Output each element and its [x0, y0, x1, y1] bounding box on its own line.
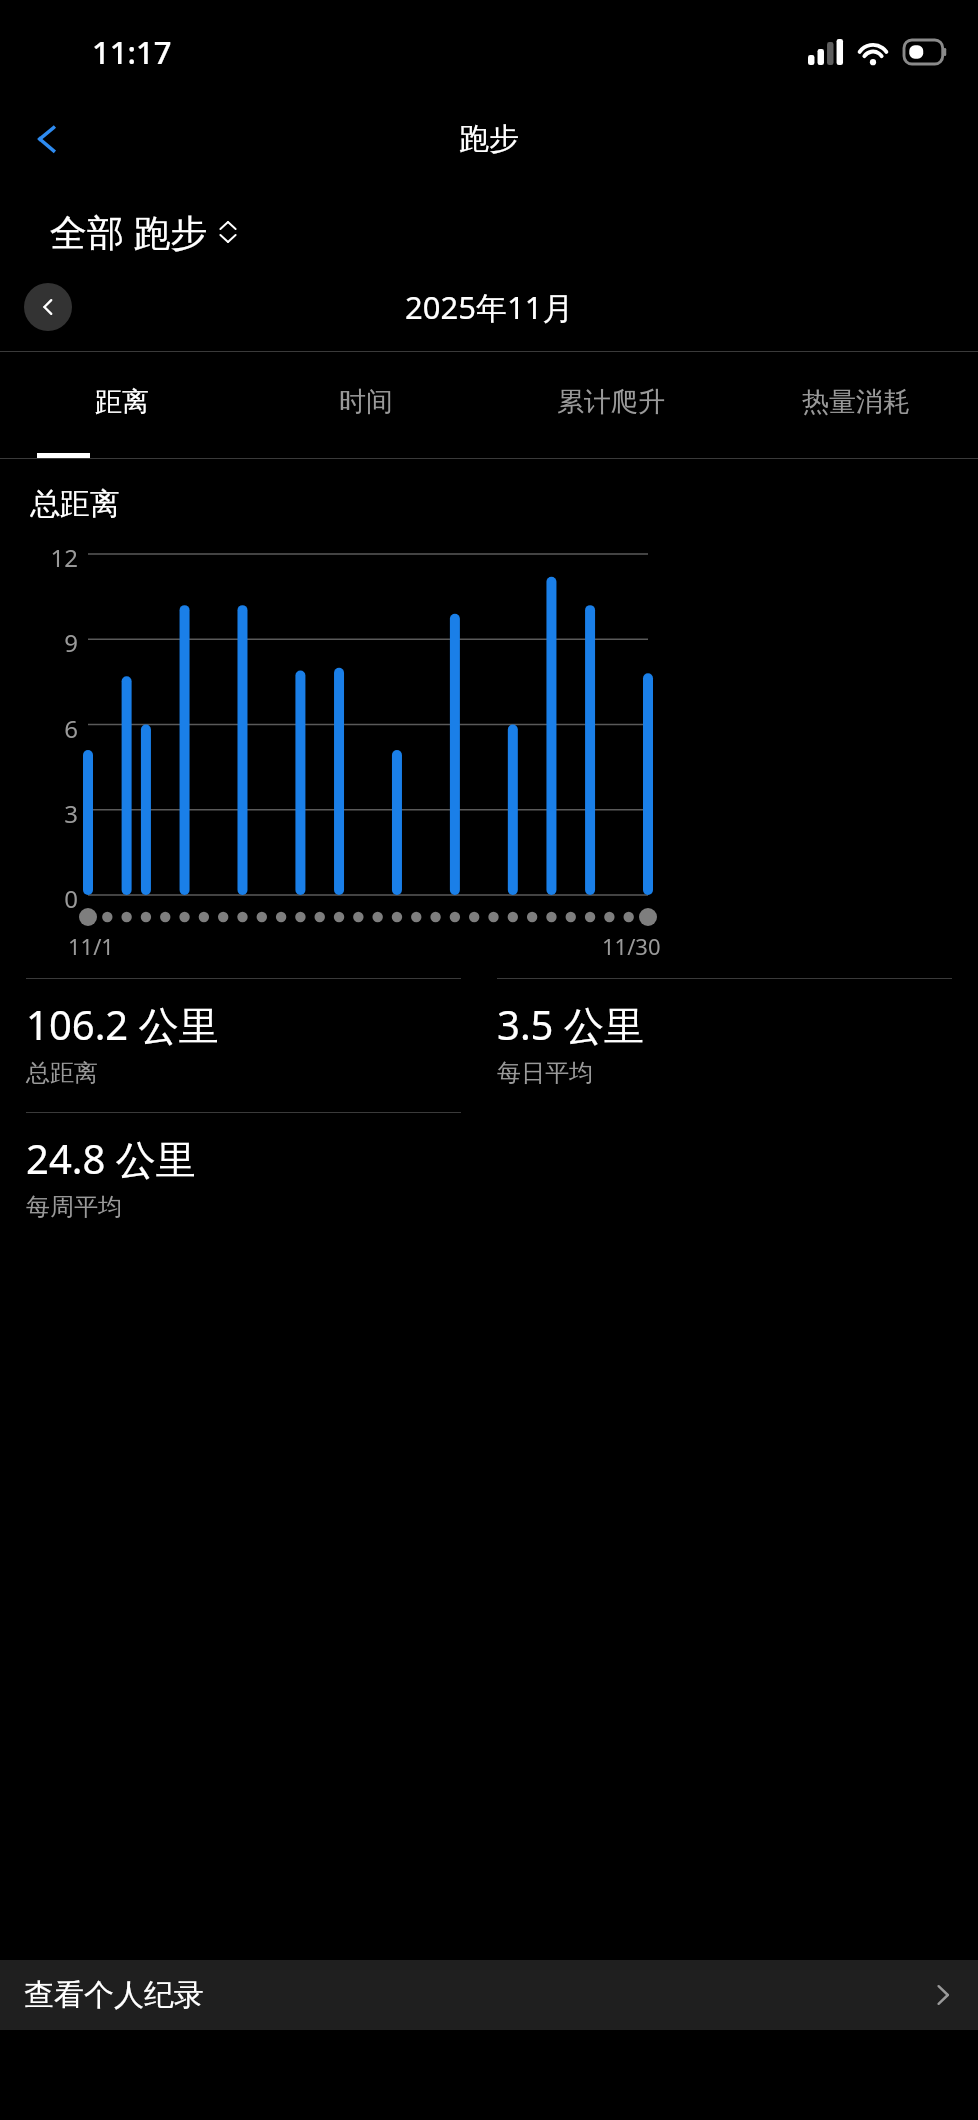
staticText: 总距离: [26, 1058, 98, 1088]
staticText: 全部 跑步: [50, 206, 208, 257]
staticText: 3.5 公里: [497, 997, 644, 1052]
staticText: 0: [0, 882, 78, 915]
staticText: 106.2 公里: [26, 997, 219, 1052]
staticText: 每周平均: [26, 1192, 122, 1222]
staticText: 24.8 公里: [26, 1131, 196, 1186]
staticText: 12: [0, 541, 78, 574]
staticText: 查看个人纪录: [24, 1976, 204, 2014]
button[interactable]: 距离: [0, 352, 244, 459]
staticText: 距离: [95, 385, 149, 419]
staticText: 总距离: [30, 485, 120, 523]
staticText: 2025年11月: [405, 286, 574, 328]
button[interactable]: 累计爬升: [488, 352, 733, 459]
staticText: 每日平均: [497, 1058, 593, 1088]
staticText: 9: [0, 626, 78, 659]
button[interactable]: Previous month: [24, 283, 72, 331]
button[interactable]: 全部 跑步: [50, 206, 238, 257]
staticText: 3: [0, 797, 78, 830]
staticText: 热量消耗: [802, 385, 910, 419]
staticText: 时间: [339, 385, 393, 419]
staticText: 11/30: [602, 931, 661, 961]
button[interactable]: 热量消耗: [733, 352, 978, 459]
staticText: 11:17: [92, 31, 172, 73]
staticText: 11/1: [68, 931, 114, 961]
staticText: 跑步: [459, 120, 519, 158]
staticText: 6: [0, 712, 78, 745]
staticText: 累计爬升: [557, 385, 665, 419]
button[interactable]: 时间: [244, 352, 488, 459]
button[interactable]: 查看个人纪录: [0, 1960, 978, 2030]
button[interactable]: Back: [14, 106, 80, 172]
